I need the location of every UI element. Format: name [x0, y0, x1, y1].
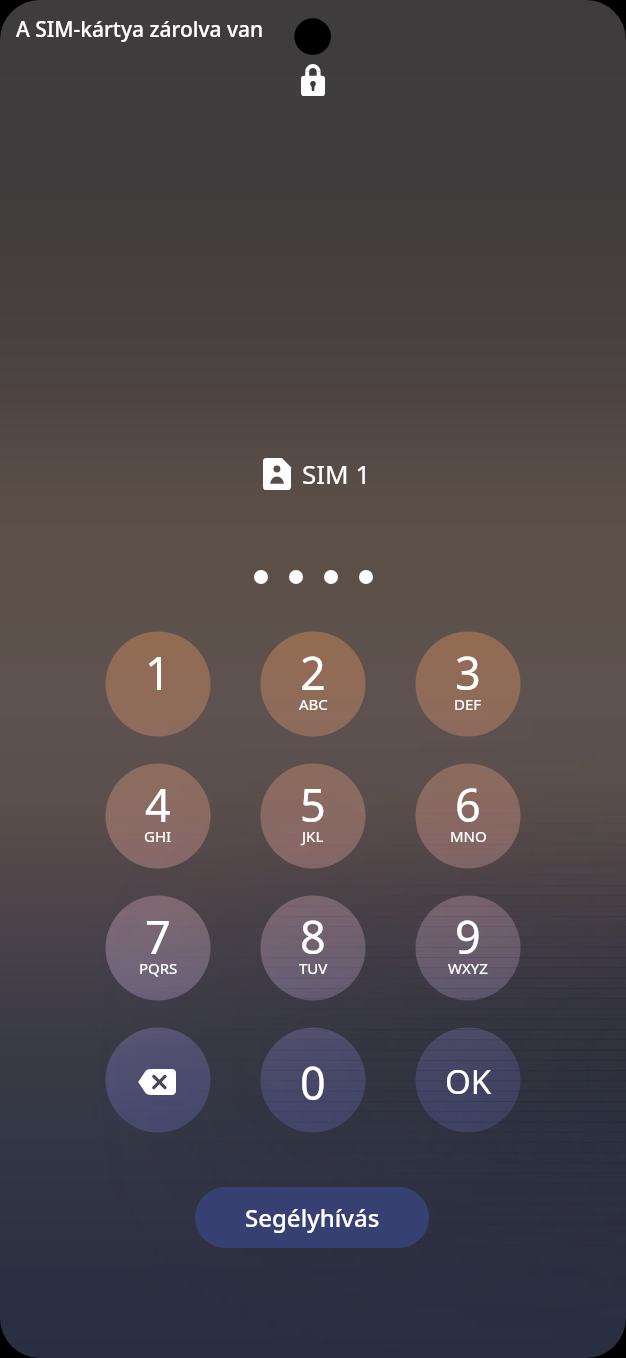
button[interactable]: 6	[415, 763, 521, 869]
button[interactable]: 5	[260, 763, 366, 869]
staticText: 0	[300, 1052, 326, 1113]
button[interactable]: 1	[105, 631, 211, 737]
staticText: OK	[445, 1059, 492, 1104]
staticText: 7	[145, 906, 171, 967]
staticText: Segélyhívás	[245, 1201, 380, 1234]
staticText: A SIM-kártya zárolva van	[16, 15, 264, 44]
staticText: 6	[455, 774, 481, 835]
staticText: DEF	[454, 694, 482, 714]
staticText: 3	[455, 642, 481, 703]
staticText: GHI	[144, 826, 172, 846]
button[interactable]: 3	[415, 631, 521, 737]
button[interactable]: 9	[415, 895, 521, 1001]
button[interactable]: 0	[260, 1027, 366, 1133]
button[interactable]: OK	[415, 1027, 521, 1133]
staticText: 8	[300, 906, 326, 967]
other: Locked	[301, 64, 325, 96]
button[interactable]: 8	[260, 895, 366, 1001]
staticText: 9	[455, 906, 481, 967]
staticText: MNO	[450, 826, 487, 846]
button[interactable]: 4	[105, 763, 211, 869]
staticText: JKL	[302, 826, 324, 846]
button[interactable]: Segélyhívás	[195, 1187, 429, 1248]
staticText: 5	[300, 774, 326, 835]
staticText: PQRS	[139, 958, 178, 978]
staticText: SIM 1	[302, 456, 371, 491]
staticText: 4	[145, 774, 171, 835]
staticText: WXYZ	[448, 958, 488, 978]
staticText: TUV	[299, 958, 328, 978]
staticText: 2	[300, 642, 326, 703]
staticText: ABC	[299, 694, 328, 714]
button[interactable]: 7	[105, 895, 211, 1001]
button[interactable]: Backspace	[105, 1027, 211, 1133]
button[interactable]: 2	[260, 631, 366, 737]
staticText: 1	[145, 642, 171, 703]
